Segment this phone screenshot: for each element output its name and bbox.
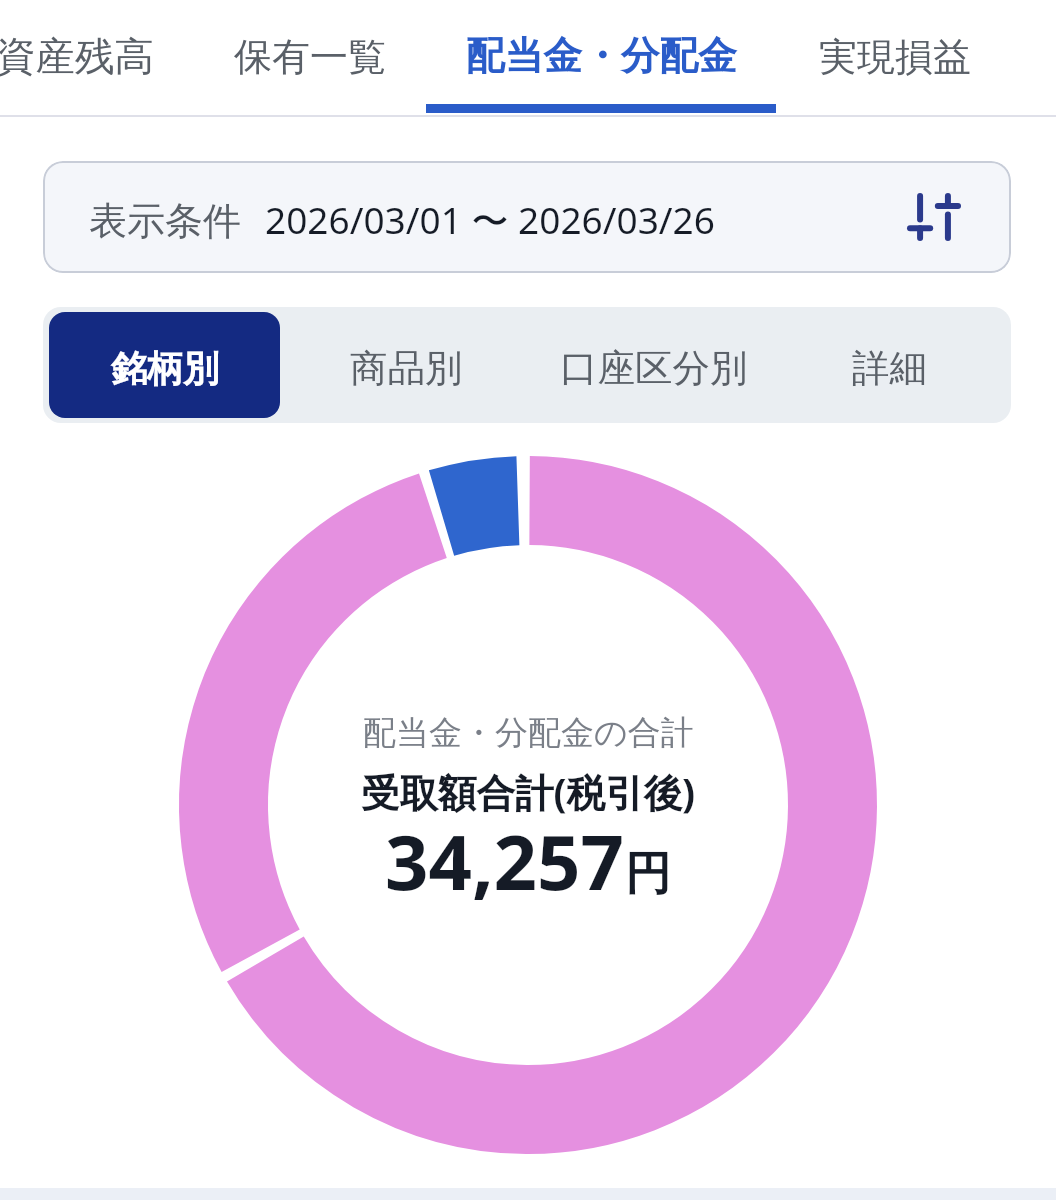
button[interactable]: 商品別 xyxy=(280,312,533,418)
button[interactable]: 表示条件を変更 xyxy=(904,187,964,247)
staticText: 商品別 xyxy=(350,345,463,392)
button[interactable]: 資産残高 xyxy=(0,0,171,117)
staticText: 実現損益 xyxy=(819,33,971,81)
staticText: 2026/03/01 〜 2026/03/26 xyxy=(265,194,715,245)
staticText: 34,257 xyxy=(385,809,625,913)
staticText: 表示条件 xyxy=(89,197,241,245)
button[interactable]: 表示条件 xyxy=(43,161,1011,273)
staticText: 資産残高 xyxy=(0,32,154,82)
staticText: 配当金・分配金 xyxy=(466,32,737,81)
button[interactable]: 配当金・分配金 xyxy=(426,0,776,117)
staticText: 口座区分別 xyxy=(560,345,748,392)
staticText: 銘柄別 xyxy=(111,346,219,391)
staticText: 受取額合計(税引後) xyxy=(361,766,696,819)
staticText: 配当金・分配金の合計 xyxy=(363,712,694,754)
staticText: 保有一覧 xyxy=(234,33,386,81)
staticText: 詳細 xyxy=(852,345,927,392)
staticText: 円 xyxy=(625,845,671,903)
button[interactable]: 実現損益 xyxy=(776,0,1014,117)
button[interactable]: 口座区分別 xyxy=(533,312,774,418)
button[interactable]: 銘柄別 xyxy=(49,312,280,418)
button[interactable]: 保有一覧 xyxy=(193,0,426,117)
button[interactable]: 詳細 xyxy=(774,312,1005,418)
